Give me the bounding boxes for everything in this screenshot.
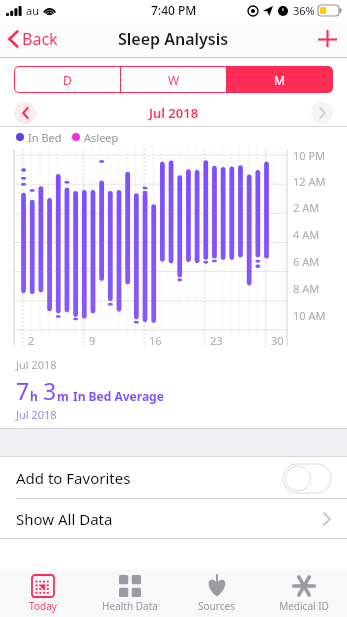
staticText: Today — [29, 599, 57, 613]
staticText: 30 — [271, 333, 284, 348]
staticText: 2 AM — [293, 200, 320, 215]
button[interactable]: M — [227, 67, 332, 92]
button[interactable]: Today — [0, 570, 86, 617]
staticText: Back — [22, 28, 58, 50]
staticText: 7 — [16, 375, 30, 406]
staticText: D — [63, 72, 72, 88]
staticText: Jul 2018 — [16, 357, 57, 372]
button[interactable]: Back — [0, 24, 68, 54]
staticText: 10 AM — [293, 308, 326, 323]
staticText: 6 AM — [293, 254, 320, 269]
button[interactable]: Previous month — [14, 102, 36, 124]
staticText: 9 — [89, 333, 96, 348]
staticText: 12 AM — [293, 174, 326, 189]
staticText: Jul 2018 — [149, 104, 199, 122]
button[interactable]: W — [121, 67, 226, 92]
staticText: 10 PM — [293, 148, 326, 163]
staticText: W — [168, 72, 180, 88]
staticText: 16 — [149, 333, 162, 348]
button[interactable]: Add to Favorites — [0, 457, 347, 499]
staticText: Jul 2018 — [16, 407, 57, 422]
button[interactable]: Sources — [173, 570, 260, 617]
staticText: 36% — [293, 3, 315, 18]
button[interactable]: Health Data — [86, 570, 173, 617]
staticText: Sleep Analysis — [118, 28, 229, 50]
staticText: 4 AM — [293, 227, 320, 242]
staticText: M — [274, 72, 285, 88]
button[interactable]: Show All Data — [0, 499, 347, 539]
staticText: Sources — [198, 599, 235, 613]
staticText: au — [26, 3, 39, 18]
staticText: h — [30, 388, 38, 404]
button[interactable]: Next month — [311, 102, 333, 124]
button[interactable]: Add — [308, 20, 347, 57]
staticText: In Bed Average — [73, 388, 164, 404]
staticText: 3 — [43, 375, 57, 406]
staticText: m — [57, 388, 69, 404]
staticText: 7:40 PM — [151, 2, 197, 18]
staticText: Medical ID — [279, 599, 329, 613]
button[interactable]: D — [15, 67, 120, 92]
staticText: Add to Favorites — [16, 468, 131, 488]
staticText: 23 — [210, 333, 223, 348]
staticText: 8 AM — [293, 281, 320, 296]
button[interactable]: Medical ID — [260, 570, 347, 617]
staticText: In Bed — [28, 130, 62, 145]
staticText: Health Data — [102, 599, 158, 613]
staticText: 2 — [28, 333, 35, 348]
staticText: Show All Data — [16, 509, 113, 529]
staticText: Asleep — [84, 130, 119, 145]
